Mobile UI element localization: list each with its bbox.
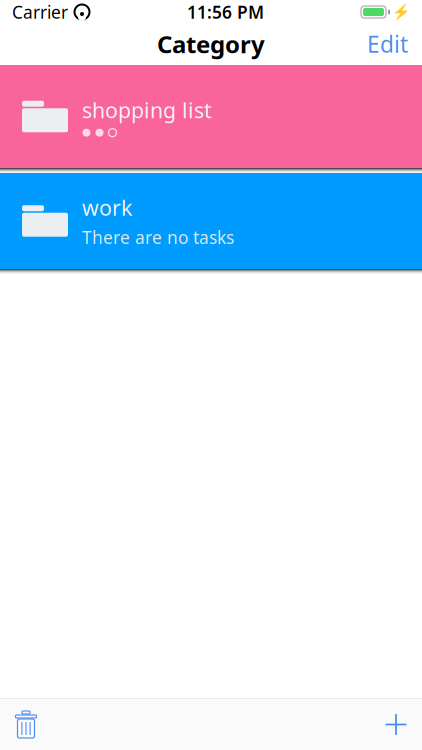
button[interactable]: shopping list (0, 65, 422, 168)
staticText: ⚡ (392, 4, 410, 20)
button[interactable]: Add category (374, 702, 418, 746)
staticText: Category (157, 28, 265, 60)
button[interactable]: work (0, 173, 422, 269)
button[interactable]: Delete (4, 702, 48, 746)
staticText: Carrier (12, 0, 68, 23)
staticText: shopping list (82, 96, 212, 124)
button[interactable]: Edit (353, 21, 422, 67)
staticText: There are no tasks (82, 226, 234, 249)
staticText: 11:56 PM (187, 0, 264, 23)
staticText: work (82, 193, 132, 222)
staticText: Edit (367, 29, 408, 59)
